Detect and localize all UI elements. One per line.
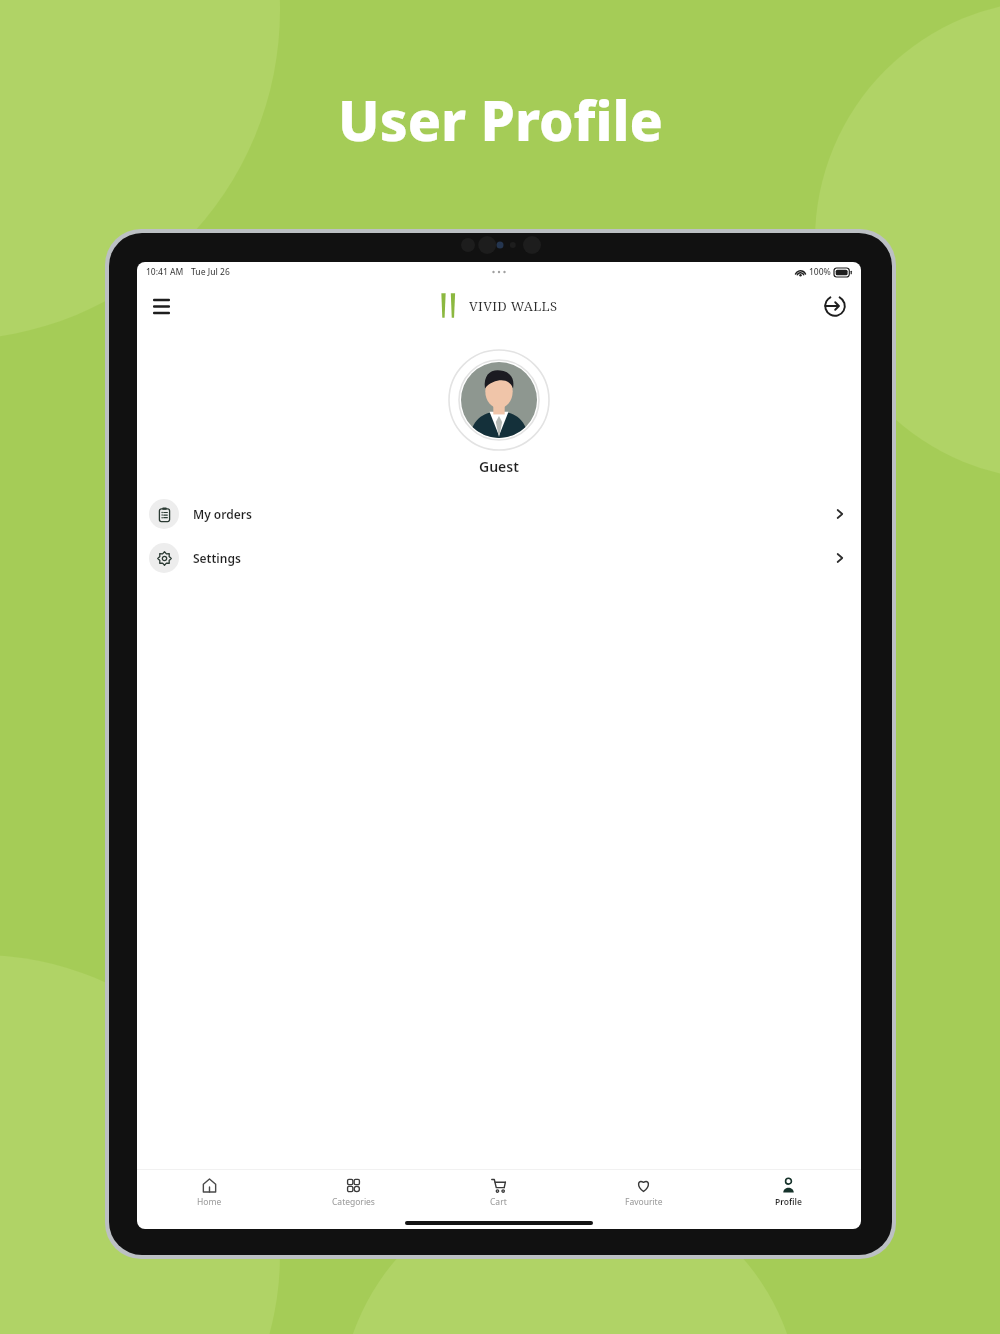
button[interactable]: Profile — [716, 1170, 861, 1216]
staticText: Tue Jul 26 — [191, 266, 230, 278]
staticText: 10:41 AM — [146, 266, 184, 278]
button[interactable]: Home — [137, 1170, 281, 1216]
button[interactable]: My orders — [137, 492, 861, 536]
staticText: 100% — [809, 266, 831, 278]
button[interactable]: Settings — [137, 536, 861, 580]
button[interactable]: Login — [818, 289, 852, 323]
staticText: Profile — [775, 1196, 802, 1208]
staticText: Categories — [332, 1196, 375, 1208]
staticText: My orders — [193, 506, 252, 522]
staticText: Settings — [193, 550, 241, 566]
staticText: User Profile — [338, 82, 663, 157]
staticText: Favourite — [625, 1196, 663, 1208]
button[interactable]: Menu — [144, 289, 178, 323]
staticText: Cart — [490, 1196, 507, 1208]
staticText: Home — [197, 1196, 222, 1208]
button[interactable]: Categories — [281, 1170, 426, 1216]
button[interactable]: Favourite — [571, 1170, 716, 1216]
staticText: VIVID WALLS — [469, 297, 558, 315]
staticText: Guest — [479, 457, 519, 476]
button[interactable]: Cart — [426, 1170, 571, 1216]
